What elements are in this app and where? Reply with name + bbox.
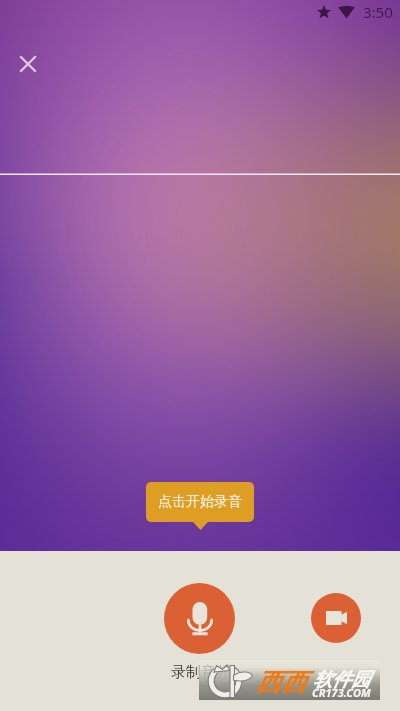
button[interactable]: 点击开始录音 xyxy=(146,482,254,530)
staticText: 软件园 xyxy=(313,668,370,692)
staticText: 点击开始录音 xyxy=(158,493,242,511)
staticText: 西西 xyxy=(256,667,306,698)
button[interactable]: Record video xyxy=(311,593,361,643)
staticText: 3:50 xyxy=(363,2,393,22)
button[interactable]: Close xyxy=(8,44,48,84)
staticText: 录制音频 xyxy=(171,663,231,682)
staticText: CR173.COM xyxy=(312,685,371,700)
button[interactable]: Record audio xyxy=(164,583,235,654)
